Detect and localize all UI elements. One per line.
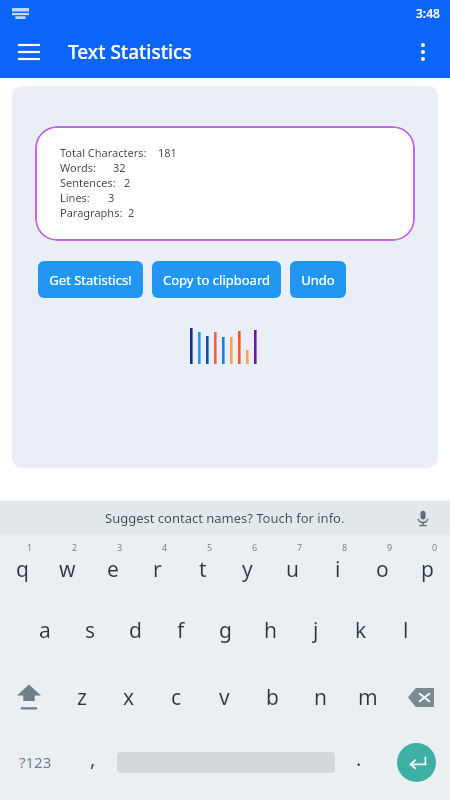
button[interactable]: Voice input bbox=[410, 505, 436, 531]
staticText: 4 bbox=[162, 541, 168, 553]
staticText: 1 bbox=[27, 541, 33, 553]
staticText: c bbox=[171, 683, 182, 712]
staticText: h bbox=[264, 616, 277, 645]
staticText: 2 bbox=[124, 175, 131, 190]
button[interactable]: x bbox=[105, 664, 152, 730]
button[interactable]: h bbox=[248, 596, 293, 664]
button[interactable]: l bbox=[383, 596, 428, 664]
button[interactable]: ?123 bbox=[0, 730, 70, 794]
button[interactable]: Menu bbox=[8, 31, 50, 73]
button[interactable]: Backspace bbox=[392, 664, 450, 730]
staticText: , bbox=[90, 745, 96, 772]
button[interactable]: n bbox=[296, 664, 344, 730]
staticText: Total Characters: bbox=[60, 145, 147, 160]
button[interactable]: c bbox=[152, 664, 200, 730]
button[interactable]: b bbox=[248, 664, 296, 730]
staticText: 2 bbox=[128, 205, 135, 220]
staticText: t bbox=[199, 555, 207, 584]
button[interactable]: More options bbox=[402, 31, 444, 73]
staticText: Text Statistics bbox=[68, 39, 192, 65]
button[interactable]: Undo bbox=[290, 261, 346, 298]
staticText: g bbox=[219, 616, 232, 645]
staticText: j bbox=[313, 616, 319, 645]
button[interactable]: 6 bbox=[225, 534, 270, 596]
staticText: z bbox=[77, 683, 87, 712]
staticText: s bbox=[85, 616, 96, 645]
button[interactable]: d bbox=[113, 596, 158, 664]
staticText: 5 bbox=[207, 541, 213, 553]
staticText: o bbox=[376, 555, 389, 584]
staticText: 6 bbox=[252, 541, 258, 553]
staticText: d bbox=[129, 616, 142, 645]
staticText: Lines: bbox=[60, 190, 90, 205]
button[interactable]: f bbox=[158, 596, 203, 664]
button[interactable]: Copy to clipboard bbox=[152, 261, 281, 298]
button[interactable]: 3 bbox=[90, 534, 135, 596]
staticText: y bbox=[242, 555, 253, 584]
button[interactable]: j bbox=[293, 596, 338, 664]
staticText: n bbox=[314, 683, 327, 712]
staticText: Words: bbox=[60, 160, 96, 175]
staticText: f bbox=[177, 616, 185, 645]
staticText: u bbox=[286, 555, 299, 584]
button[interactable]: 4 bbox=[135, 534, 180, 596]
staticText: Sentences: bbox=[60, 175, 116, 190]
button[interactable]: Get Statistics! bbox=[38, 261, 143, 298]
staticText: Undo bbox=[301, 271, 335, 289]
button[interactable]: 5 bbox=[180, 534, 225, 596]
staticText: Copy to clipboard bbox=[163, 271, 270, 289]
staticText: 7 bbox=[297, 541, 303, 553]
staticText: 0 bbox=[432, 541, 438, 553]
staticText: v bbox=[219, 683, 230, 712]
staticText: 8 bbox=[342, 541, 348, 553]
staticText: Paragraphs: bbox=[60, 205, 123, 220]
staticText: 3 bbox=[117, 541, 123, 553]
staticText: a bbox=[39, 616, 51, 645]
button[interactable]: . bbox=[336, 730, 382, 794]
button[interactable]: k bbox=[338, 596, 383, 664]
button[interactable]: 8 bbox=[315, 534, 360, 596]
button[interactable]: m bbox=[344, 664, 392, 730]
staticText: Suggest contact names? Touch for info. bbox=[105, 509, 345, 527]
staticText: i bbox=[335, 555, 341, 584]
button[interactable]: 0 bbox=[405, 534, 450, 596]
button[interactable]: 9 bbox=[360, 534, 405, 596]
button[interactable]: z bbox=[58, 664, 105, 730]
staticText: . bbox=[356, 745, 362, 772]
button[interactable]: 1 bbox=[0, 534, 45, 596]
staticText: r bbox=[153, 555, 162, 584]
button[interactable]: Enter bbox=[382, 730, 450, 794]
staticText: 32 bbox=[113, 160, 126, 175]
staticText: ?123 bbox=[19, 752, 52, 772]
staticText: p bbox=[421, 555, 434, 584]
button[interactable]: v bbox=[200, 664, 248, 730]
staticText: w bbox=[59, 555, 76, 584]
staticText: e bbox=[107, 555, 119, 584]
button[interactable]: Suggest contact names? Touch for info. bbox=[0, 501, 450, 534]
staticText: 3:48 bbox=[416, 5, 440, 21]
staticText: q bbox=[16, 555, 29, 584]
button[interactable]: g bbox=[203, 596, 248, 664]
staticText: k bbox=[355, 616, 367, 645]
staticText: 9 bbox=[387, 541, 393, 553]
staticText: Get Statistics! bbox=[49, 271, 132, 289]
button[interactable]: a bbox=[22, 596, 68, 664]
staticText: m bbox=[358, 683, 378, 712]
staticText: 3 bbox=[108, 190, 115, 205]
button[interactable]: 7 bbox=[270, 534, 315, 596]
button[interactable]: , bbox=[70, 730, 116, 794]
staticText: x bbox=[123, 683, 135, 712]
button[interactable]: 2 bbox=[45, 534, 90, 596]
button[interactable]: Shift bbox=[0, 664, 58, 730]
staticText: l bbox=[403, 616, 409, 645]
button[interactable]: s bbox=[68, 596, 113, 664]
staticText: b bbox=[266, 683, 279, 712]
staticText: 2 bbox=[72, 541, 78, 553]
staticText: 181 bbox=[158, 145, 177, 160]
